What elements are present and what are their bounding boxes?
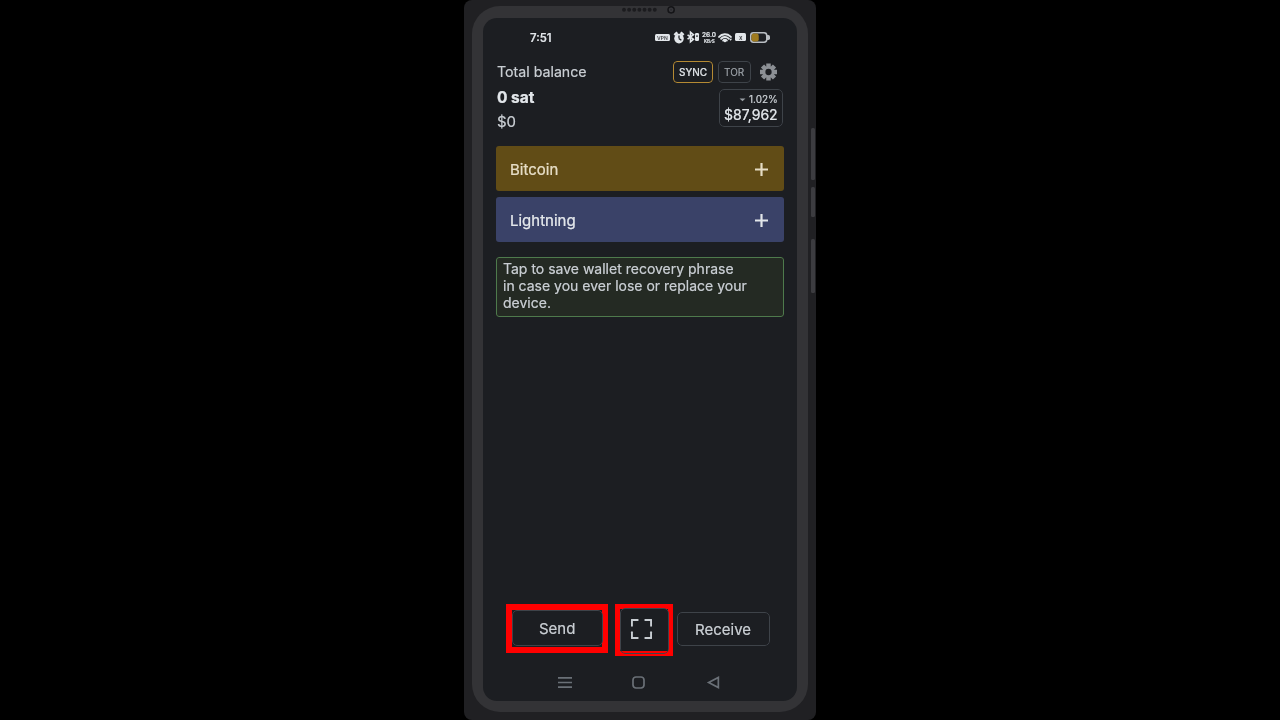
staticText: Lightning [510, 211, 576, 229]
staticText: SYNC [679, 66, 708, 78]
button[interactable]: Settings [757, 60, 780, 83]
button[interactable]: Lightning [496, 197, 784, 242]
button[interactable]: TOR [718, 61, 751, 83]
staticText: in case you ever lose or replace your [503, 277, 747, 294]
staticText: Tap to save wallet recovery phrase [503, 260, 734, 277]
button[interactable]: Bitcoin [496, 146, 784, 191]
staticText: Bitcoin [510, 160, 559, 178]
staticText: 0 sat [497, 88, 535, 107]
button[interactable]: Tap to save wallet recovery phrase [496, 257, 784, 317]
staticText: 1.02% [749, 93, 778, 105]
button[interactable]: Receive [677, 612, 770, 646]
staticText: Total balance [497, 63, 587, 80]
button[interactable]: SYNC [673, 61, 713, 83]
staticText: $0 [497, 112, 517, 130]
button[interactable]: Home [622, 666, 655, 699]
staticText: Send [539, 619, 576, 637]
button[interactable]: Recent apps [548, 666, 581, 699]
staticText: VPN [657, 35, 668, 41]
staticText: TOR [724, 66, 745, 78]
staticText: KB/S [704, 39, 715, 43]
staticText: device. [503, 294, 551, 311]
button[interactable]: 1.02% [719, 89, 783, 127]
staticText: Receive [695, 620, 752, 638]
staticText: $87,962 [724, 106, 778, 123]
staticText: 7:51 [530, 31, 552, 45]
button[interactable]: Send [512, 610, 603, 646]
button[interactable]: Scan QR code [620, 608, 669, 654]
staticText: x [739, 34, 743, 41]
button[interactable]: Back [697, 666, 730, 699]
staticText: 26.0 [702, 31, 716, 39]
